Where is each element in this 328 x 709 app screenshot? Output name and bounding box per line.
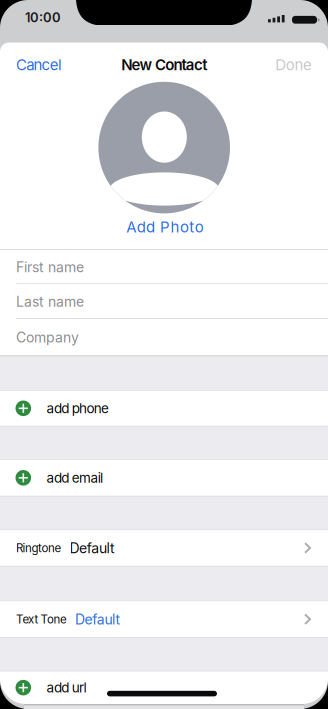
- staticText: Cancel: [16, 56, 62, 74]
- button[interactable]: Text Tone: [0, 601, 328, 637]
- button[interactable]: Cancel: [16, 56, 62, 74]
- staticText: add phone: [47, 400, 109, 416]
- staticText: Default: [69, 540, 115, 556]
- staticText: Last name: [16, 293, 84, 310]
- button[interactable]: add phone: [0, 391, 328, 426]
- staticText: Add Photo: [126, 218, 204, 236]
- staticText: Company: [16, 329, 79, 346]
- staticText: 10:00: [25, 10, 61, 25]
- staticText: Ringtone: [16, 541, 61, 555]
- staticText: New Contact: [121, 56, 207, 74]
- button[interactable]: First name: [0, 250, 328, 284]
- staticText: add email: [47, 470, 103, 486]
- button[interactable]: Last name: [0, 284, 328, 319]
- button[interactable]: Add Photo: [98, 82, 230, 213]
- button[interactable]: Ringtone: [0, 530, 328, 566]
- button[interactable]: add url: [0, 671, 328, 704]
- button[interactable]: Add Photo: [126, 218, 204, 236]
- button[interactable]: Company: [0, 319, 328, 356]
- button[interactable]: Done: [275, 56, 312, 74]
- staticText: Done: [275, 56, 312, 74]
- button[interactable]: add email: [0, 460, 328, 496]
- staticText: add url: [47, 679, 86, 696]
- staticText: Text Tone: [16, 612, 67, 626]
- staticText: Default: [75, 611, 121, 628]
- staticText: First name: [16, 259, 84, 275]
